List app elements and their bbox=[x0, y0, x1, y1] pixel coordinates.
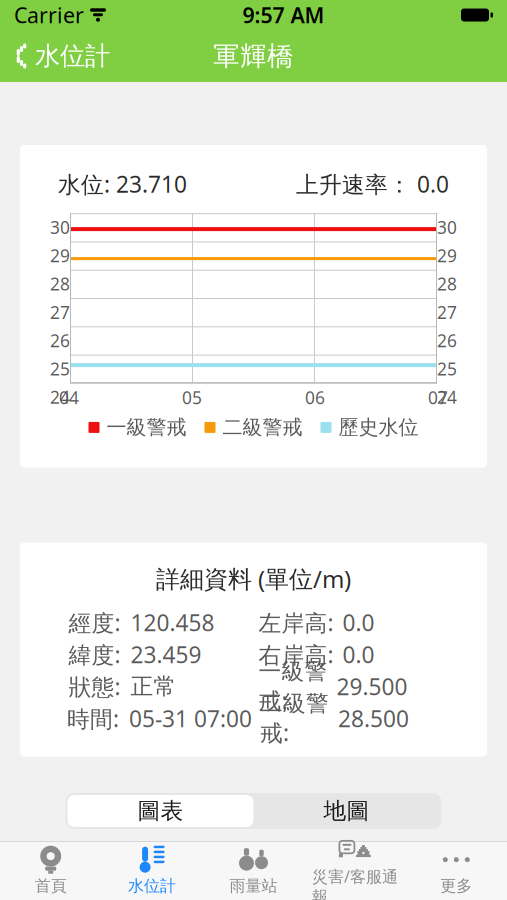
staticText: 24 bbox=[437, 385, 457, 408]
staticText: 軍輝橋 bbox=[213, 40, 294, 72]
staticText: 詳細資料 (單位/m) bbox=[156, 563, 351, 595]
staticText: 雨量站 bbox=[229, 876, 277, 896]
staticText: 水位: 23.710 bbox=[58, 169, 187, 199]
button[interactable]: 圖表 bbox=[67, 795, 253, 827]
staticText: 一級警戒: bbox=[258, 658, 327, 715]
staticText: 狀態: bbox=[68, 671, 120, 702]
staticText: 水位計 bbox=[128, 876, 176, 896]
staticText: 歷史水位 bbox=[338, 415, 418, 440]
staticText: 0.0 bbox=[342, 639, 374, 670]
staticText: 29 bbox=[437, 244, 457, 267]
staticText: 更多 bbox=[440, 876, 472, 896]
staticText: 左岸高: bbox=[258, 607, 333, 638]
staticText: 05 bbox=[182, 386, 202, 409]
staticText: 上升速率： 0.0 bbox=[296, 169, 449, 199]
button[interactable]: 首頁 bbox=[0, 842, 101, 900]
staticText: 緯度: bbox=[68, 639, 120, 670]
button[interactable]: 水位計 bbox=[0, 31, 122, 81]
staticText: 23.459 bbox=[130, 639, 201, 670]
staticText: 28 bbox=[50, 272, 70, 295]
staticText: 0.0 bbox=[342, 607, 374, 638]
staticText: 28.500 bbox=[338, 703, 409, 734]
staticText: 26 bbox=[50, 329, 70, 352]
staticText: 二級警戒: bbox=[260, 690, 329, 747]
staticText: 時間: bbox=[67, 703, 119, 734]
staticText: 27 bbox=[437, 301, 457, 324]
staticText: 經度: bbox=[68, 607, 120, 638]
staticText: 右岸高: bbox=[258, 639, 333, 670]
staticText: 25 bbox=[50, 357, 70, 380]
staticText: 正常 bbox=[130, 673, 176, 700]
staticText: 水位計 bbox=[35, 40, 110, 71]
staticText: Carrier bbox=[14, 1, 84, 29]
staticText: 30 bbox=[50, 216, 70, 239]
staticText: 07 bbox=[428, 386, 448, 409]
staticText: 06 bbox=[305, 386, 325, 409]
button[interactable]: 地圖 bbox=[253, 795, 439, 827]
staticText: 地圖 bbox=[323, 797, 369, 825]
button[interactable]: 更多 bbox=[406, 842, 507, 900]
staticText: 圖表 bbox=[137, 797, 183, 825]
staticText: 一級警戒 bbox=[106, 415, 186, 440]
button[interactable]: 雨量站 bbox=[203, 842, 304, 900]
staticText: 04 bbox=[59, 386, 79, 409]
staticText: 首頁 bbox=[35, 876, 67, 896]
staticText: 災害/客服通報 bbox=[312, 865, 398, 900]
staticText: 24 bbox=[50, 385, 70, 408]
button[interactable]: 災害/客服通報 bbox=[304, 842, 406, 900]
staticText: 二級警戒 bbox=[222, 415, 302, 440]
staticText: 30 bbox=[437, 216, 457, 239]
staticText: 29.500 bbox=[336, 671, 407, 702]
staticText: 25 bbox=[437, 357, 457, 380]
staticText: 27 bbox=[50, 301, 70, 324]
staticText: 9:57 AM bbox=[242, 1, 324, 29]
staticText: 28 bbox=[437, 272, 457, 295]
staticText: 120.458 bbox=[130, 607, 214, 638]
staticText: 26 bbox=[437, 329, 457, 352]
button[interactable]: 水位計 bbox=[101, 842, 203, 900]
staticText: 29 bbox=[50, 244, 70, 267]
staticText: 05-31 07:00 bbox=[129, 703, 252, 734]
